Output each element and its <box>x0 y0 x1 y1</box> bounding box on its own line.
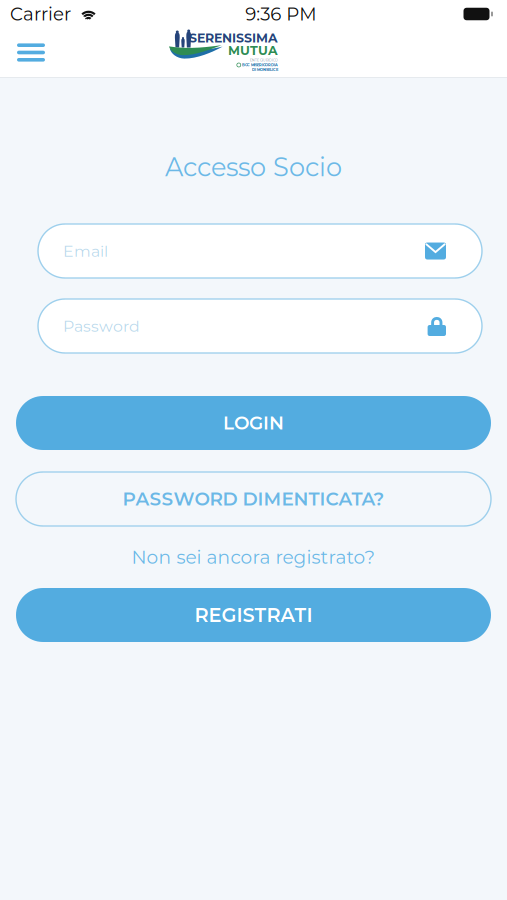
button[interactable]: LOGIN <box>16 396 491 450</box>
staticText: Carrier <box>10 3 71 25</box>
button[interactable]: Menu <box>0 28 62 77</box>
button[interactable]: PASSWORD DIMENTICATA? <box>16 472 491 526</box>
staticText: Email <box>63 241 108 261</box>
staticText: LOGIN <box>223 412 284 434</box>
staticText: BCC MISERICORDIA <box>242 63 278 67</box>
staticText: SERENISSIMA <box>189 30 278 46</box>
staticText: 9:36 PM <box>245 3 316 25</box>
button[interactable]: Non sei ancora registrato? <box>0 545 507 569</box>
staticText: MUTUA <box>228 43 278 58</box>
staticText: DI MONSELICE <box>252 68 278 72</box>
staticText: PASSWORD DIMENTICATA? <box>122 488 384 510</box>
staticText: ENTE GIURIDICO <box>250 58 278 62</box>
staticText: Password <box>63 316 140 336</box>
staticText: REGISTRATI <box>194 603 312 627</box>
staticText: Accesso Socio <box>165 151 342 183</box>
staticText: Non sei ancora registrato? <box>131 546 375 568</box>
button[interactable]: REGISTRATI <box>16 588 491 642</box>
